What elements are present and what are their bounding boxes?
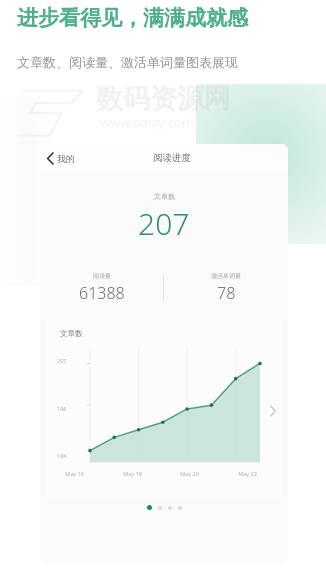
staticText: May 20	[180, 470, 199, 477]
button[interactable]	[178, 506, 182, 510]
staticText: 进步看得见，满满成就感	[17, 5, 248, 31]
staticText: 阅读量	[93, 272, 111, 280]
button[interactable]	[147, 505, 152, 510]
button[interactable]: 我的	[40, 149, 81, 168]
staticText: 文章数	[154, 192, 175, 201]
button[interactable]: Next chart	[266, 404, 280, 418]
staticText: 207	[138, 203, 190, 244]
staticText: 阅读进度	[153, 152, 191, 164]
staticText: 207	[57, 357, 67, 364]
staticText: 196	[57, 405, 67, 412]
staticText: May 16	[65, 470, 84, 477]
staticText: 激活单词量	[211, 272, 241, 280]
button[interactable]	[158, 506, 162, 510]
staticText: 61388	[79, 282, 125, 304]
button[interactable]: 文章数	[46, 320, 282, 498]
staticText: 78	[217, 282, 236, 304]
staticText: 我的	[57, 153, 75, 164]
staticText: 文章数	[60, 329, 83, 338]
button[interactable]	[168, 506, 172, 510]
staticText: 文章数、阅读量、激活单词量图表展现	[17, 54, 238, 70]
staticText: May 18	[123, 470, 142, 477]
staticText: May 22	[238, 470, 257, 477]
staticText: 数码资源网	[96, 82, 231, 116]
staticText: 184	[57, 452, 67, 459]
staticText: www.smzy.com	[100, 113, 194, 131]
button[interactable]: 激活单词量	[164, 272, 288, 304]
button[interactable]: 阅读量	[40, 272, 163, 304]
